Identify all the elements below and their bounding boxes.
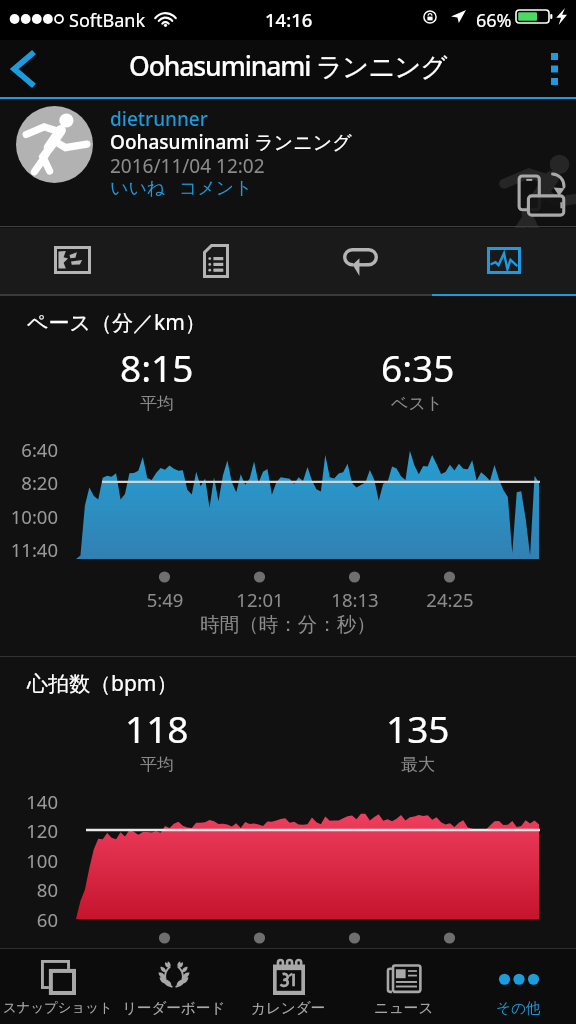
button[interactable]: ニュース bbox=[346, 949, 461, 1024]
staticText: 5:49 bbox=[120, 587, 210, 612]
staticText: 8:20 bbox=[0, 470, 58, 495]
staticText: 100 bbox=[0, 848, 58, 873]
staticText: カレンダー bbox=[251, 999, 326, 1017]
button[interactable]: その他 bbox=[461, 949, 576, 1024]
staticText: ペース（分／km） bbox=[27, 308, 206, 337]
button[interactable]: Map bbox=[0, 228, 144, 296]
button[interactable]: More options bbox=[532, 40, 576, 97]
staticText: Oohasuminami ランニング bbox=[129, 48, 447, 84]
button[interactable]: コメント bbox=[179, 177, 253, 200]
staticText: ベスト bbox=[391, 393, 444, 414]
button[interactable]: カレンダー bbox=[231, 949, 346, 1024]
staticText: 118 bbox=[125, 703, 189, 753]
staticText: 66% bbox=[476, 8, 512, 33]
staticText: Oohasuminami ランニング bbox=[110, 129, 352, 155]
staticText: 時間（時：分：秒） bbox=[0, 612, 576, 637]
staticText: 心拍数（bpm） bbox=[27, 669, 178, 698]
staticText: 8:15 bbox=[120, 342, 194, 392]
staticText: 平均 bbox=[140, 393, 174, 414]
staticText: その他 bbox=[496, 999, 541, 1017]
staticText: dietrunner bbox=[110, 106, 208, 132]
staticText: 60 bbox=[0, 907, 58, 932]
button[interactable]: Share bbox=[515, 171, 570, 221]
staticText: 80 bbox=[0, 877, 58, 902]
staticText: 12:01 bbox=[215, 587, 305, 612]
button[interactable]: Laps bbox=[288, 228, 432, 296]
staticText: 最大 bbox=[401, 754, 435, 775]
button[interactable]: スナップショット bbox=[0, 949, 116, 1024]
staticText: 平均 bbox=[140, 754, 174, 775]
button[interactable]: Charts bbox=[432, 228, 576, 296]
staticText: 14:16 bbox=[265, 7, 313, 32]
button[interactable]: Back bbox=[0, 40, 52, 97]
staticText: 6:40 bbox=[0, 437, 58, 462]
staticText: 135 bbox=[386, 703, 450, 753]
staticText: リーダーボード bbox=[122, 999, 226, 1017]
staticText: 18:13 bbox=[310, 587, 400, 612]
button[interactable]: リーダーボード bbox=[116, 949, 231, 1024]
staticText: SoftBank bbox=[69, 8, 145, 33]
button[interactable]: いいね bbox=[110, 177, 166, 200]
staticText: 6:35 bbox=[381, 342, 455, 392]
staticText: 10:00 bbox=[0, 504, 58, 529]
staticText: 24:25 bbox=[405, 587, 495, 612]
staticText: ニュース bbox=[374, 999, 434, 1017]
staticText: スナップショット bbox=[3, 999, 113, 1016]
staticText: 11:40 bbox=[0, 537, 58, 562]
staticText: 120 bbox=[0, 818, 58, 843]
staticText: 2016/11/04 12:02 bbox=[110, 153, 265, 179]
button[interactable]: Details bbox=[144, 228, 288, 296]
staticText: 140 bbox=[0, 789, 58, 814]
